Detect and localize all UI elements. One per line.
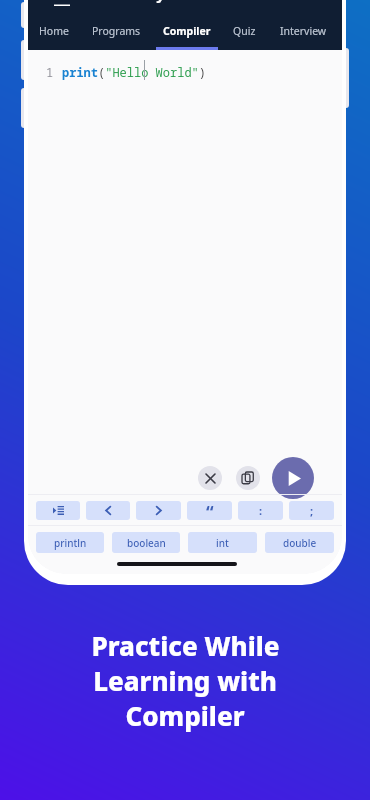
button[interactable]: Indent xyxy=(36,501,80,520)
button[interactable]: Run xyxy=(272,457,314,499)
staticText: ; xyxy=(310,503,314,518)
button[interactable]: Menu xyxy=(50,0,74,12)
staticText: print("Hello World") xyxy=(62,64,207,80)
staticText: Home xyxy=(39,24,69,38)
staticText: Compiler xyxy=(125,698,245,733)
button[interactable]: Quote xyxy=(187,501,232,520)
button[interactable]: Compiler xyxy=(152,12,222,50)
button[interactable]: Home xyxy=(28,12,80,50)
staticText: double xyxy=(283,536,317,550)
staticText: Quiz xyxy=(233,24,256,38)
button[interactable]: int xyxy=(188,532,257,553)
staticText: Compiler xyxy=(163,24,211,38)
button[interactable]: Right xyxy=(136,501,181,520)
staticText: “ xyxy=(206,501,214,520)
staticText: Practice While xyxy=(91,628,280,663)
button[interactable]: println xyxy=(36,532,104,553)
staticText: boolean xyxy=(127,536,166,550)
button[interactable]: Left xyxy=(86,501,130,520)
button[interactable]: Semicolon xyxy=(289,501,334,520)
button[interactable]: Interview xyxy=(266,12,340,50)
button[interactable]: Quiz xyxy=(222,12,266,50)
staticText: 1 xyxy=(46,64,54,80)
staticText: Interview xyxy=(280,24,327,38)
button[interactable]: Colon xyxy=(238,501,283,520)
staticText: println xyxy=(54,536,87,550)
staticText: Learning with xyxy=(93,663,277,698)
staticText: : xyxy=(259,503,263,518)
button[interactable]: Clear xyxy=(198,466,222,490)
button[interactable]: double xyxy=(265,532,334,553)
staticText: Programs xyxy=(92,24,141,38)
button[interactable]: Programs xyxy=(80,12,152,50)
button[interactable]: boolean xyxy=(112,532,180,553)
staticText: Python ad xyxy=(147,0,223,4)
staticText: int xyxy=(216,536,229,550)
button[interactable]: Copy xyxy=(236,466,260,490)
